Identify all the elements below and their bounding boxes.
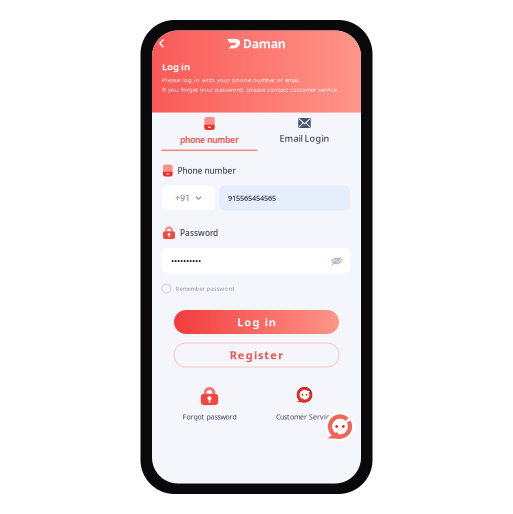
staticText: +91 — [175, 192, 190, 204]
staticText: Log in — [237, 315, 276, 329]
staticText: Forgot password — [182, 412, 236, 421]
button[interactable]: Log in — [174, 310, 339, 334]
staticText: Please log in with your phone number or … — [162, 76, 300, 84]
staticText: phone number — [180, 134, 239, 145]
staticText: Daman — [243, 35, 286, 52]
button[interactable]: +91 — [162, 185, 215, 210]
staticText: If you forget your password, please cont… — [162, 86, 337, 94]
button[interactable]: phone number — [162, 112, 257, 151]
staticText: •••••••••• — [171, 255, 201, 267]
button[interactable]: Remember password — [152, 274, 234, 295]
staticText: Phone number — [178, 165, 236, 176]
staticText: Password — [180, 227, 218, 238]
button[interactable]: Email Login — [257, 113, 352, 150]
staticText: 915565454565 — [228, 193, 276, 203]
staticText: Register — [230, 348, 283, 362]
button[interactable]: Register — [174, 343, 339, 367]
button[interactable]: Back — [152, 33, 171, 54]
button[interactable]: Show password — [327, 251, 346, 271]
button[interactable]: Forgot password — [162, 387, 257, 421]
staticText: Customer Service — [276, 412, 333, 421]
button[interactable]: Customer Service — [257, 387, 352, 421]
staticText: Log in — [162, 60, 190, 73]
staticText: Email Login — [279, 132, 329, 144]
button[interactable]: Customer service chat — [325, 411, 355, 441]
staticText: Remember password — [175, 285, 234, 292]
